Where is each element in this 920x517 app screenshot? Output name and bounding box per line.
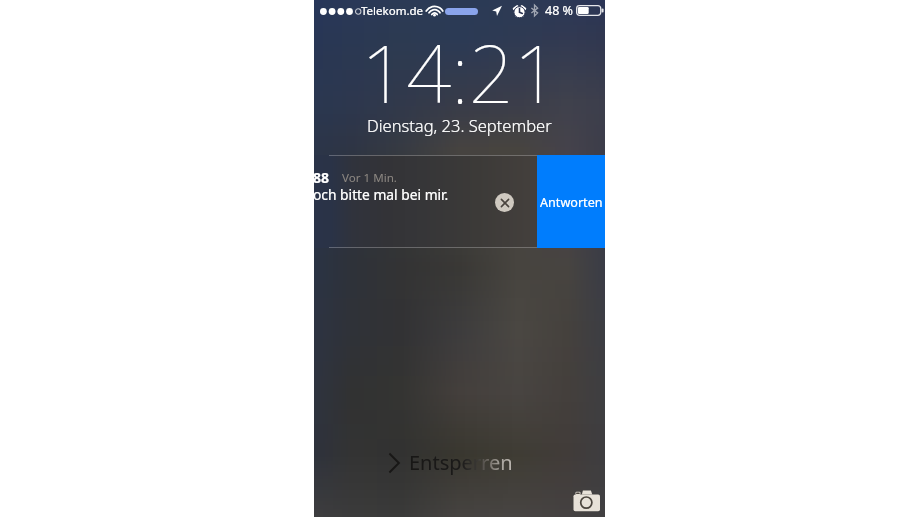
button[interactable]: Open camera [573,485,605,515]
staticText: 14:21 [361,19,559,127]
staticText: Entsperren [409,449,513,476]
button[interactable] [314,155,605,248]
staticText: 48 % [545,2,573,19]
button[interactable]: Dismiss notification [495,193,514,212]
button[interactable]: Antworten [537,155,605,248]
staticText: och bitte mal bei mir. [314,185,449,204]
staticText: Vor 1 Min. [342,170,397,186]
staticText: 88 [314,168,330,187]
staticText: Telekom.de [361,3,424,19]
staticText: Dienstag, 23. September [367,114,552,136]
button[interactable]: Entsperren [389,449,513,476]
staticText: Antworten [540,194,603,211]
